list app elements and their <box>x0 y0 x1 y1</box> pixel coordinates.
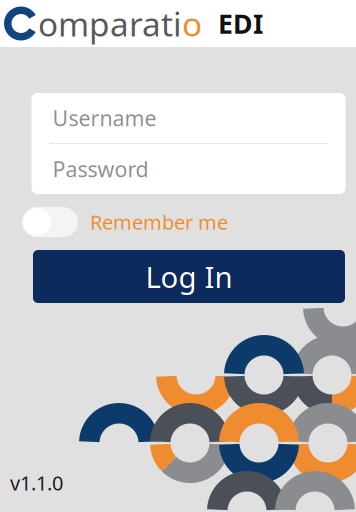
staticText: Password <box>52 155 148 183</box>
staticText: v1.1.0 <box>10 469 63 496</box>
button[interactable]: Log In <box>33 250 345 303</box>
staticText: o <box>182 1 202 46</box>
staticText: omparati <box>38 1 182 46</box>
staticText: Remember me <box>90 209 228 235</box>
button[interactable]: Remember me <box>22 207 78 237</box>
staticText: Username <box>52 104 156 132</box>
staticText: EDI <box>218 6 263 41</box>
staticText: Log In <box>145 257 232 296</box>
